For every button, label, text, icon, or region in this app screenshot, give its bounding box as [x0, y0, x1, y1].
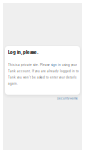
button[interactable]: Security Home [57, 97, 78, 100]
staticText: Tank you won't be asked to enter your de… [8, 76, 76, 79]
staticText: again. [8, 82, 18, 85]
staticText: Tank account. If you are already logged … [8, 70, 79, 73]
staticText: Log in, please. [8, 50, 39, 55]
staticText: Security Home [57, 97, 78, 100]
button[interactable]: sign in [51, 63, 61, 67]
staticText: sign in [51, 63, 61, 67]
staticText: using your [61, 63, 77, 67]
staticText: This is a private site. Please [8, 63, 51, 67]
